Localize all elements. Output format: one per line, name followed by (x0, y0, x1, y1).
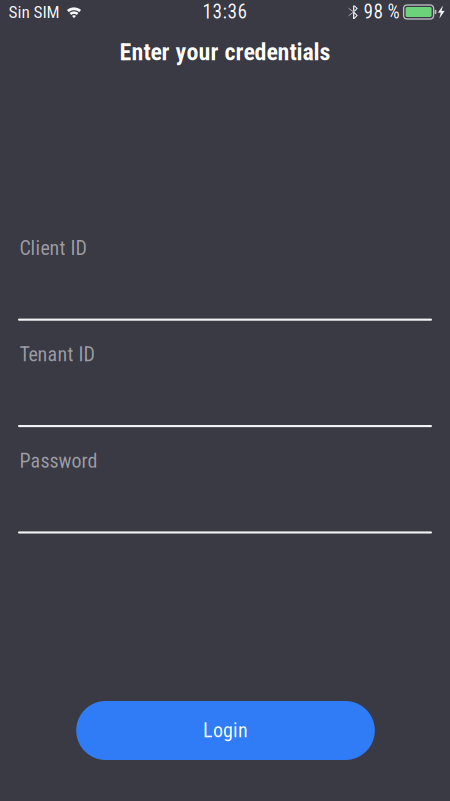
button[interactable]: Login (76, 701, 375, 760)
staticText: Tenant ID (19, 343, 94, 366)
staticText: 98 % (364, 1, 400, 23)
staticText: Sin SIM (8, 2, 59, 22)
button[interactable]: Client ID (18, 238, 432, 321)
button[interactable]: Password (18, 451, 432, 533)
staticText: Password (19, 449, 97, 473)
staticText: Client ID (19, 236, 86, 260)
staticText: Enter your credentials (119, 38, 330, 66)
staticText: Login (203, 719, 248, 742)
button[interactable]: Tenant ID (18, 344, 432, 427)
staticText: 13:36 (202, 1, 247, 23)
